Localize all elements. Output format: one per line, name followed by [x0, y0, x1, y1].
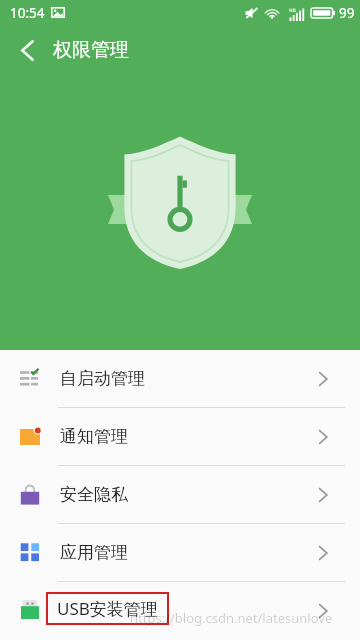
staticText: 通知管理	[60, 426, 128, 447]
staticText: 99	[339, 4, 355, 22]
button[interactable]: 安全隐私	[0, 466, 360, 523]
staticText: 安全隐私	[60, 484, 128, 505]
button[interactable]: 自启动管理	[0, 350, 360, 407]
staticText: USB安装管理	[57, 597, 158, 620]
staticText: 权限管理	[53, 38, 129, 62]
button[interactable]: Back	[0, 26, 49, 74]
staticText: https://blog.csdn.net/latesunlove	[130, 609, 333, 627]
staticText: 10:54	[10, 4, 45, 22]
button[interactable]: 应用管理	[0, 524, 360, 581]
button[interactable]: 通知管理	[0, 408, 360, 465]
button[interactable]: USB安装管理	[0, 582, 360, 639]
staticText: 应用管理	[60, 542, 128, 563]
staticText: 自启动管理	[60, 368, 145, 389]
